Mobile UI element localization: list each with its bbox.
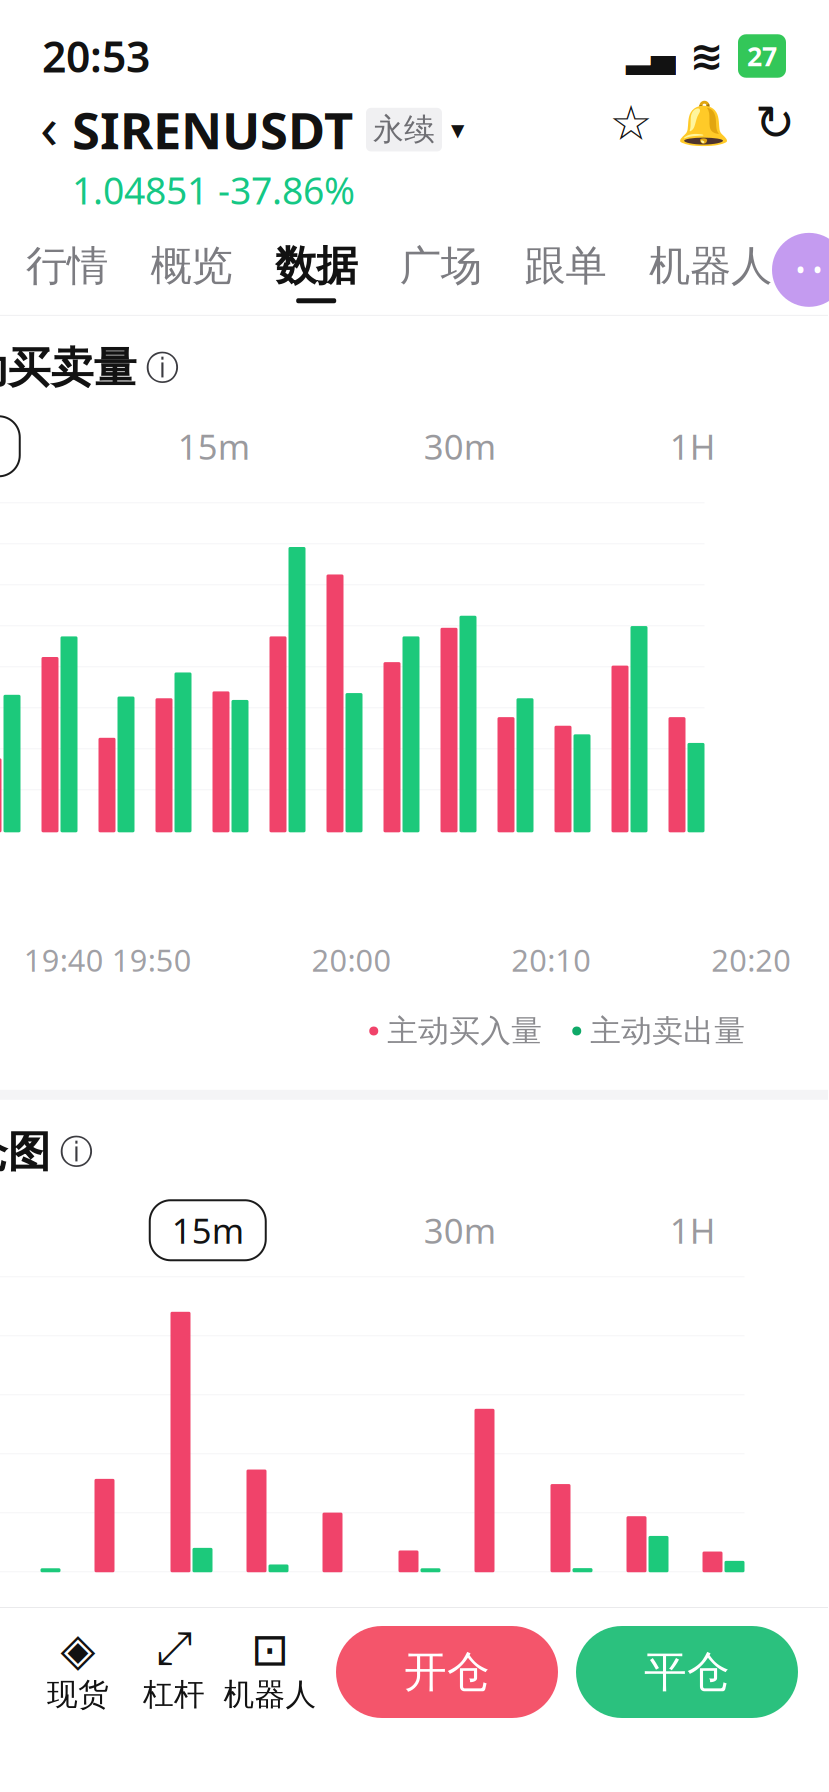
staticText: 1H [670,423,716,469]
button[interactable]: 1H [654,1200,732,1260]
staticText: • • [795,252,822,288]
button[interactable]: 广场 [400,240,482,303]
staticText: 机器人 [223,1676,316,1713]
staticText: 🔔 [676,99,729,147]
staticText: 1H [670,1207,716,1253]
staticText: ☆ [609,96,652,150]
button[interactable]: ⤢ [126,1631,222,1713]
staticText: 数据 [275,240,357,291]
button[interactable]: 数据 [275,240,357,303]
staticText: 15m [178,423,250,469]
button[interactable]: Back [26,96,72,156]
button[interactable]: 平仓 [576,1626,798,1718]
staticText: 19:50 [112,939,192,980]
staticText: 爆仓图 [0,1126,51,1178]
button[interactable]: Alerts [676,96,730,150]
staticText: 17:15 [4,1700,84,1741]
staticText: ◈ [60,1624,95,1675]
staticText: ↻ [755,96,795,150]
button[interactable]: 1H [654,416,732,476]
staticText: 开仓 [404,1646,490,1698]
staticText: ‹ [40,87,58,165]
staticText: 20:20 [711,939,791,980]
staticText: ⓘ [146,348,179,388]
staticText: 永续 [373,111,435,148]
button[interactable]: 概览 [151,240,233,303]
button[interactable]: 开仓 [336,1626,558,1718]
button[interactable]: ◈ [30,1631,126,1713]
staticText: 18:15 [294,1700,374,1741]
staticText: ▾ [451,114,464,145]
staticText: ⤢ [156,1628,192,1672]
staticText: SIRENUSDT [72,96,353,163]
staticText: 18:45 [497,1700,577,1741]
staticText: 跟单 [524,240,606,291]
button[interactable]: 30m [408,416,512,476]
staticText: 17:45 [92,1700,172,1741]
staticText: 主动卖出量 [590,1012,745,1050]
staticText: 15m [172,1207,244,1253]
button[interactable]: 机器人 [649,240,772,303]
button[interactable]: 30m [408,1200,512,1260]
button[interactable]: 15m [162,416,266,476]
staticText: 杠杆 [143,1676,205,1713]
button[interactable]: More [772,233,829,307]
staticText: 1.04851 -37.86% [72,165,355,215]
staticText: 机器人 [649,240,772,291]
staticText: 19:15 [700,1700,780,1741]
staticText: 27 [747,38,777,74]
staticText: ▂▄ [626,38,676,74]
staticText: 30m [424,1207,496,1253]
button[interactable]: 跟单 [524,240,606,303]
staticText: 30m [424,423,496,469]
button[interactable]: 5m [0,416,20,476]
button[interactable]: 永续 [366,108,464,151]
staticText: 20:10 [511,939,591,980]
staticText: 行情 [26,240,108,291]
staticText: 20:53 [42,28,150,84]
button[interactable]: ⊡ [222,1631,318,1713]
button[interactable]: 15m [150,1200,266,1260]
staticText: 现货 [47,1676,109,1713]
button[interactable]: 行情 [26,240,108,303]
staticText: ≋ [690,33,724,79]
staticText: 概览 [151,240,233,291]
staticText: 主动买卖量 [0,342,137,394]
staticText: ⊡ [251,1624,289,1675]
staticText: 平仓 [644,1646,730,1698]
staticText: ⓘ [60,1132,93,1172]
staticText: 广场 [400,240,482,291]
staticText: 主动买入量 [387,1012,542,1050]
button[interactable]: Favorite [604,96,658,150]
staticText: 20:00 [312,939,392,980]
staticText: 19:40 [24,939,104,980]
button[interactable]: Share [748,96,802,150]
